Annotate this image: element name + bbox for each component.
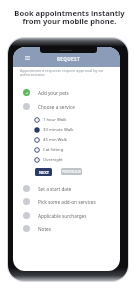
staticText: Appointment requests require approval by… <box>20 68 104 78</box>
staticText: Overnight <box>43 157 63 163</box>
staticText: 30 minute Walk <box>43 127 74 133</box>
button[interactable]: Menu <box>19 53 28 62</box>
button[interactable]: 30 minute Walk <box>13 125 120 134</box>
button[interactable]: Add your pets <box>13 88 120 97</box>
staticText: Choose a service <box>38 104 75 110</box>
button[interactable]: Applicable surcharges <box>13 211 120 220</box>
staticText: 45 min Walk <box>43 137 68 143</box>
staticText: Set a start date <box>38 186 72 192</box>
staticText: Book appointments instantly from your mo… <box>0 8 139 26</box>
staticText: Notes <box>38 226 51 232</box>
staticText: PREVIOUS <box>62 169 81 174</box>
button[interactable]: 1 hour Walk <box>13 115 120 124</box>
button[interactable]: NEXT <box>35 168 52 176</box>
button[interactable]: Set a start date <box>13 184 120 193</box>
button[interactable]: PREVIOUS <box>61 168 82 175</box>
staticText: 1 hour Walk <box>43 117 67 123</box>
staticText: NEXT <box>39 170 49 175</box>
button[interactable]: Cat Sitting <box>13 145 120 154</box>
button[interactable]: Notes <box>13 224 120 233</box>
staticText: Add your pets <box>38 90 69 96</box>
staticText: REQUEST <box>57 56 80 62</box>
button[interactable]: Choose a service <box>13 102 120 111</box>
staticText: Pick some add-on services <box>38 199 96 205</box>
button[interactable]: Overnight <box>13 155 120 164</box>
staticText: Cat Sitting <box>43 147 64 153</box>
staticText: Applicable surcharges <box>38 213 87 219</box>
button[interactable]: 45 min Walk <box>13 135 120 144</box>
button[interactable]: Pick some add-on services <box>13 197 120 206</box>
